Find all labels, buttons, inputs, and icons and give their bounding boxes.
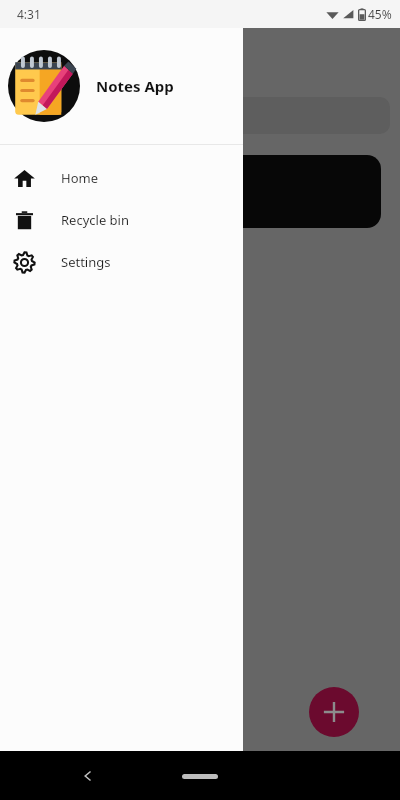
staticText: 45% [368, 6, 392, 22]
staticText: 4:31 [17, 6, 41, 22]
staticText: Notes App [96, 76, 174, 96]
button[interactable]: Home [170, 764, 230, 788]
staticText: Wednesday , 29 December 2021 16:29 PM [26, 211, 223, 225]
button[interactable] [12, 97, 390, 134]
button[interactable]: Home [0, 157, 243, 199]
button[interactable]: Settings [0, 241, 243, 283]
staticText: Home [61, 169, 98, 187]
button[interactable]: Grocery List [12, 155, 381, 228]
staticText: Recycle bin [61, 211, 129, 229]
staticText: Grocery List [26, 163, 122, 185]
staticText: Settings [61, 253, 111, 271]
button[interactable]: Add note [309, 687, 359, 737]
button[interactable]: Back [72, 760, 104, 792]
button[interactable]: Recycle bin [0, 199, 243, 241]
